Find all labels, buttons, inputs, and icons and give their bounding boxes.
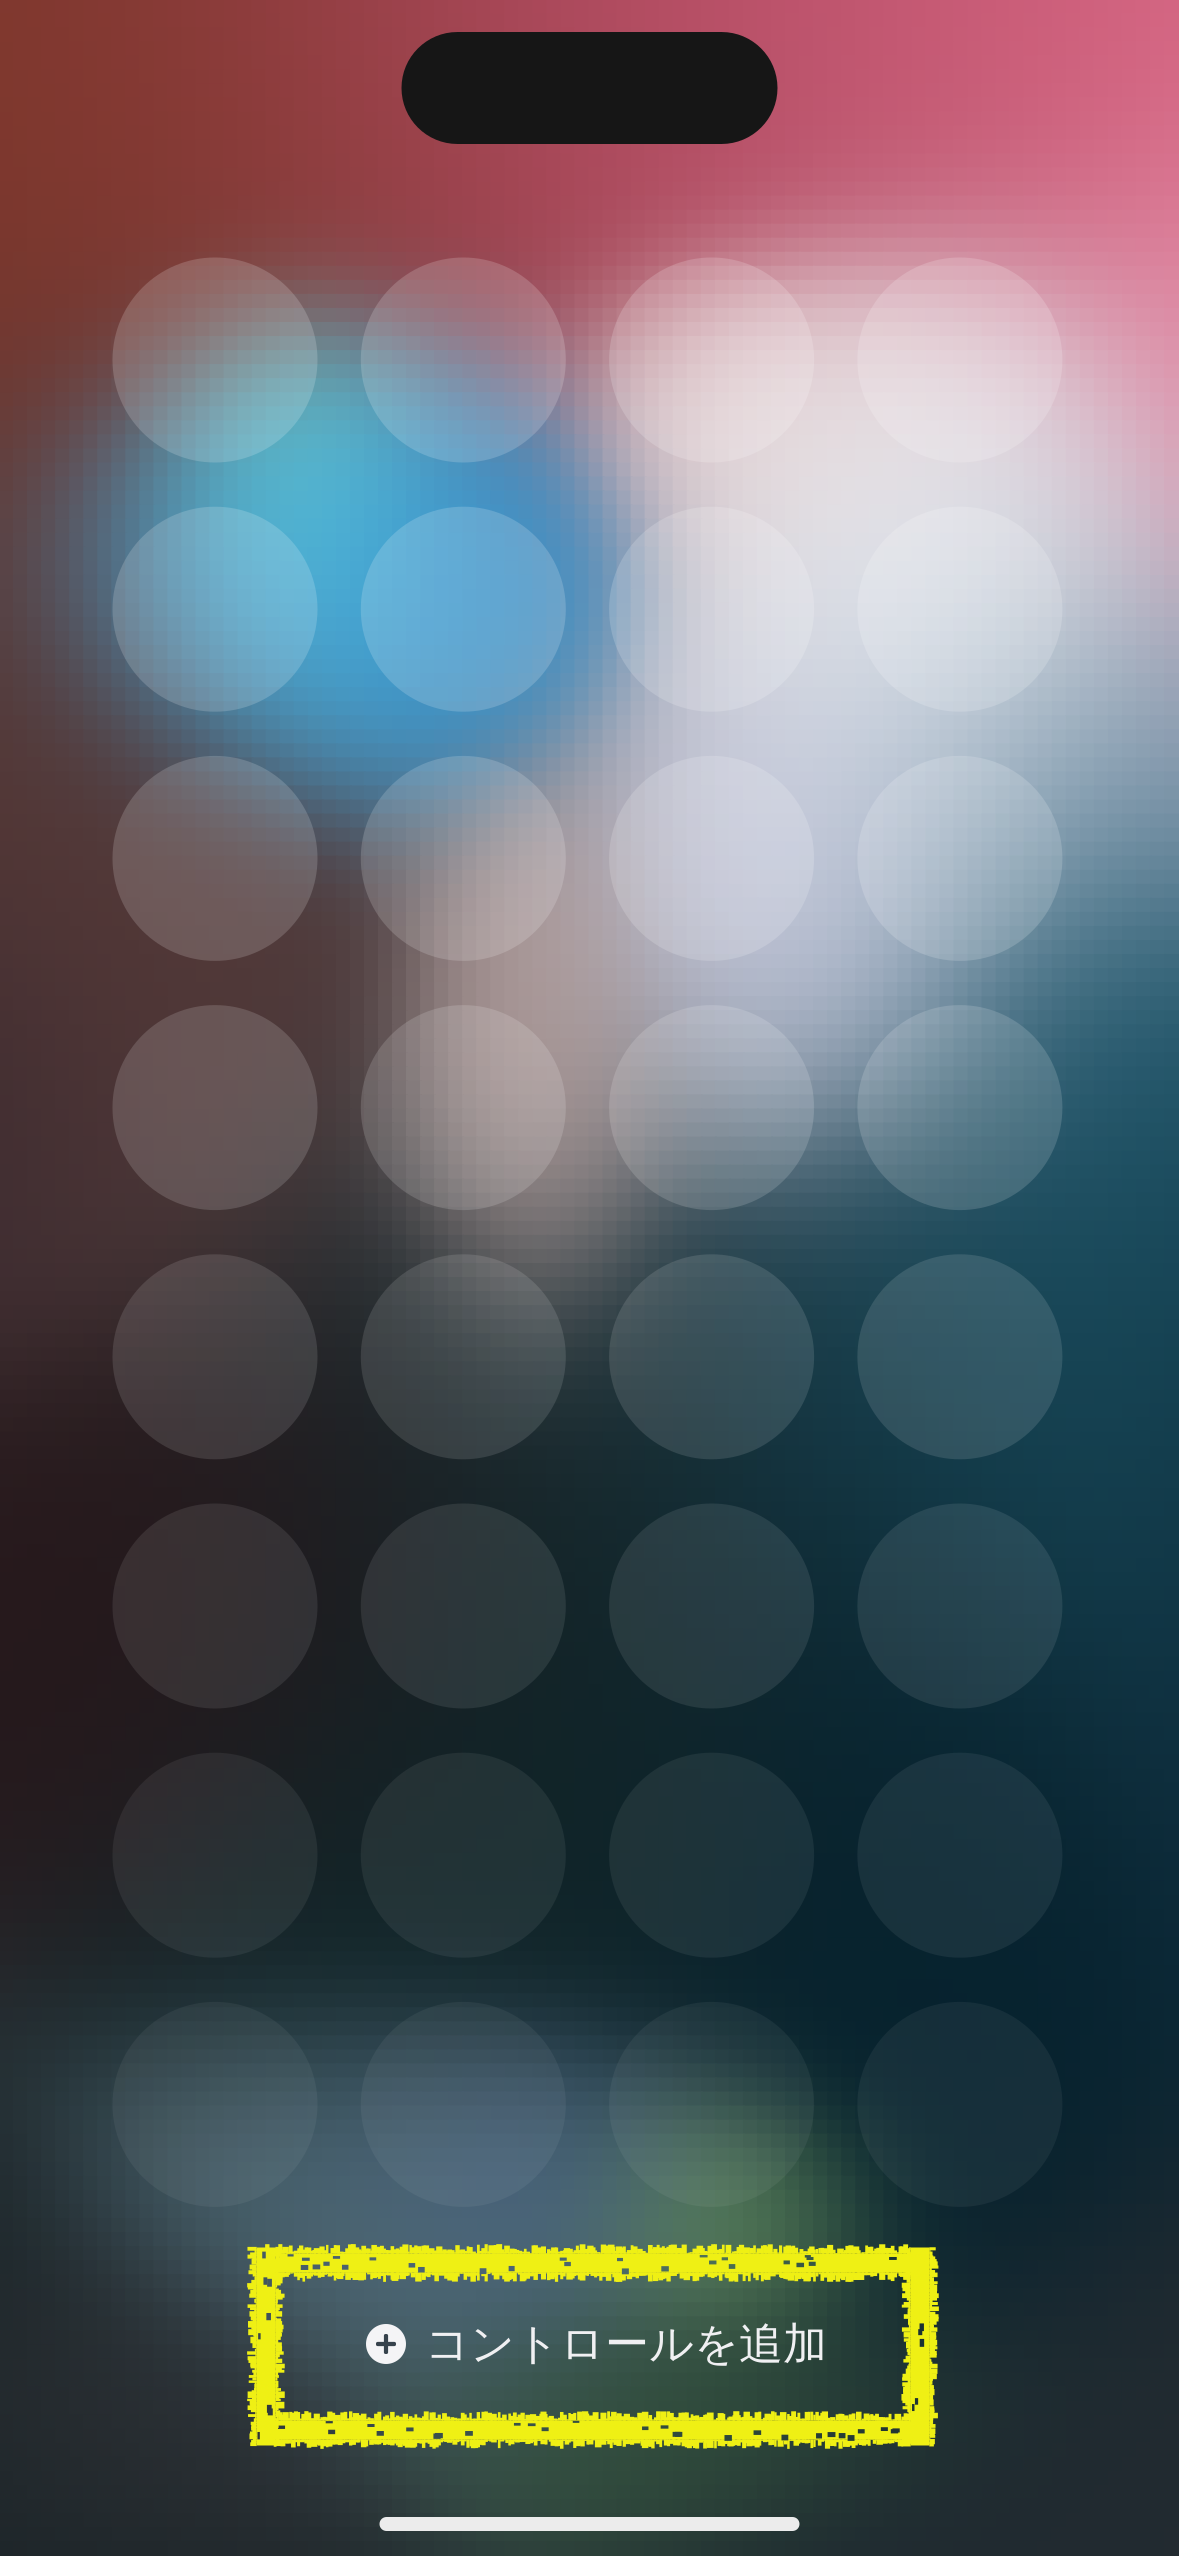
staticText: コントロールを追加: [425, 2317, 827, 2371]
button[interactable]: コントロールを追加: [320, 2284, 873, 2404]
